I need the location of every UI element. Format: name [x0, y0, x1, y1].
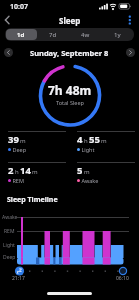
staticText: 55: [89, 133, 100, 146]
button[interactable]: [124, 13, 136, 27]
button[interactable]: 2: [8, 162, 66, 191]
staticText: 4: [77, 133, 83, 146]
staticText: Light: [80, 146, 95, 153]
button[interactable]: 4: [77, 131, 135, 160]
staticText: Deep: [3, 254, 16, 261]
button[interactable]: [6, 29, 37, 40]
staticText: 7d: [49, 31, 57, 39]
staticText: Awake: [80, 177, 99, 184]
staticText: 4w: [81, 31, 90, 39]
button[interactable]: [4, 48, 13, 57]
staticText: Sunday, September 8: [30, 48, 109, 58]
button[interactable]: 4w: [69, 28, 101, 41]
button[interactable]: 1d: [5, 28, 37, 41]
button[interactable]: 5: [77, 162, 135, 191]
staticText: 2: [8, 164, 14, 177]
staticText: 1y: [114, 31, 121, 39]
staticText: Sleep: [59, 15, 81, 26]
staticText: Deep: [11, 146, 27, 153]
staticText: m: [32, 168, 38, 176]
staticText: REM: [4, 228, 15, 235]
staticText: m: [84, 168, 90, 176]
staticText: 1d: [17, 31, 25, 39]
button[interactable]: [2, 14, 14, 26]
staticText: m: [20, 137, 26, 145]
staticText: 10:07: [10, 2, 28, 12]
button[interactable]: [126, 48, 135, 57]
button[interactable]: 1y: [101, 28, 133, 41]
staticText: Sleep Timeline: [7, 195, 58, 205]
staticText: m: [101, 137, 107, 145]
staticText: 21:17: [12, 275, 25, 282]
button[interactable]: 7d: [37, 28, 69, 41]
staticText: Total Sleep: [56, 99, 84, 106]
staticText: 39: [8, 133, 19, 146]
staticText: 7h 48m: [48, 82, 92, 98]
staticText: Awake: [2, 214, 18, 221]
staticText: 14: [20, 164, 31, 177]
staticText: REM: [11, 177, 24, 184]
staticText: 06:10: [116, 275, 129, 282]
staticText: h: [15, 168, 19, 176]
staticText: 5: [77, 164, 83, 177]
button[interactable]: 39: [8, 131, 66, 160]
staticText: h: [84, 137, 88, 145]
staticText: Light: [3, 242, 15, 249]
